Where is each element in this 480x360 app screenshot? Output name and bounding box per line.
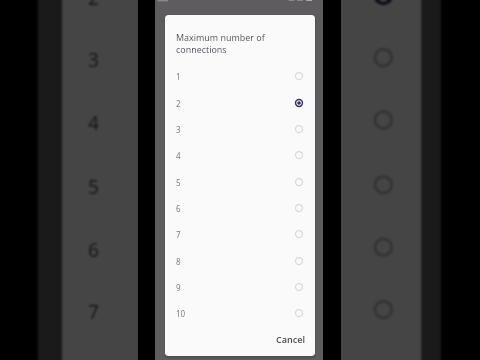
staticText: Cancel xyxy=(276,333,306,345)
button[interactable]: 8 xyxy=(165,251,315,271)
staticText: 4 xyxy=(88,108,100,134)
other: Select 8 xyxy=(294,256,304,266)
button[interactable]: 7 xyxy=(165,224,315,244)
other: Select 10 xyxy=(294,308,304,318)
button[interactable]: 6 xyxy=(62,223,422,271)
other: Select 5 xyxy=(294,177,304,187)
staticText: 3 xyxy=(88,46,100,72)
staticText: Maximum number of connections xyxy=(176,31,310,55)
button[interactable]: 8 xyxy=(62,350,422,360)
staticText: 5 xyxy=(176,177,181,188)
staticText: 3 xyxy=(176,124,181,135)
staticText: 5 xyxy=(88,173,100,199)
staticText: 4 xyxy=(176,150,181,161)
button[interactable]: Cancel xyxy=(271,328,311,350)
staticText: 8 xyxy=(176,256,181,267)
other: Select 6 xyxy=(294,203,304,213)
staticText: 1 xyxy=(176,71,181,82)
staticText: 7 xyxy=(88,298,100,324)
other: Select 3 xyxy=(371,46,395,70)
other: Select 4 xyxy=(294,150,304,160)
staticText: 6 xyxy=(176,203,181,214)
other: Select 7 xyxy=(294,229,304,239)
button[interactable]: 4 xyxy=(165,145,315,165)
staticText: 2 xyxy=(88,0,100,10)
button[interactable]: 7 xyxy=(62,286,422,334)
button[interactable]: 1 xyxy=(165,66,315,86)
button[interactable]: 4 xyxy=(62,96,422,144)
staticText: 10 xyxy=(176,308,186,319)
other: Select 2 xyxy=(294,98,304,108)
other: Select 4 xyxy=(371,108,395,132)
button[interactable]: 9 xyxy=(165,277,315,297)
button[interactable]: 2 xyxy=(165,93,315,113)
button[interactable]: 5 xyxy=(62,161,422,209)
button[interactable]: 6 xyxy=(165,198,315,218)
button[interactable]: 2 xyxy=(62,0,422,19)
staticText: 6 xyxy=(88,235,100,262)
other: Select 7 xyxy=(371,298,395,322)
other: Select 1 xyxy=(294,71,304,81)
button[interactable]: 3 xyxy=(165,119,315,139)
button[interactable]: 3 xyxy=(62,34,422,82)
staticText: 2 xyxy=(176,98,181,109)
staticText: 7 xyxy=(176,229,181,240)
other: Select 2 xyxy=(371,0,395,7)
other: Select 6 xyxy=(371,235,395,259)
staticText: 9 xyxy=(176,282,181,293)
button[interactable]: 5 xyxy=(165,172,315,192)
other: Select 9 xyxy=(294,282,304,292)
button[interactable]: 10 xyxy=(165,303,315,323)
other: Select 3 xyxy=(294,124,304,134)
other: Select 5 xyxy=(371,173,395,197)
